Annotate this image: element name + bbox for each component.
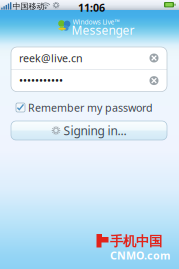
staticText: Windows Live™: [72, 17, 119, 26]
staticText: reek@live.cn: [19, 51, 83, 65]
staticText: 11:06: [78, 1, 105, 15]
button[interactable]: Clear text: [147, 74, 160, 87]
staticText: Signing in...: [63, 122, 126, 138]
button[interactable]: Signing in...: [11, 121, 167, 140]
staticText: CNMO.com: [110, 248, 170, 263]
staticText: 中国移动: [13, 1, 45, 11]
button[interactable]: reek@live.cn: [11, 47, 167, 69]
staticText: Messenger: [71, 22, 134, 38]
button[interactable]: •••••••••••: [11, 70, 167, 92]
button[interactable]: Clear text: [147, 51, 160, 64]
staticText: •••••••••••: [19, 73, 63, 88]
staticText: 手机中国: [110, 233, 162, 249]
button[interactable]: Remember my password: [16, 102, 166, 113]
staticText: Remember my password: [28, 100, 153, 115]
